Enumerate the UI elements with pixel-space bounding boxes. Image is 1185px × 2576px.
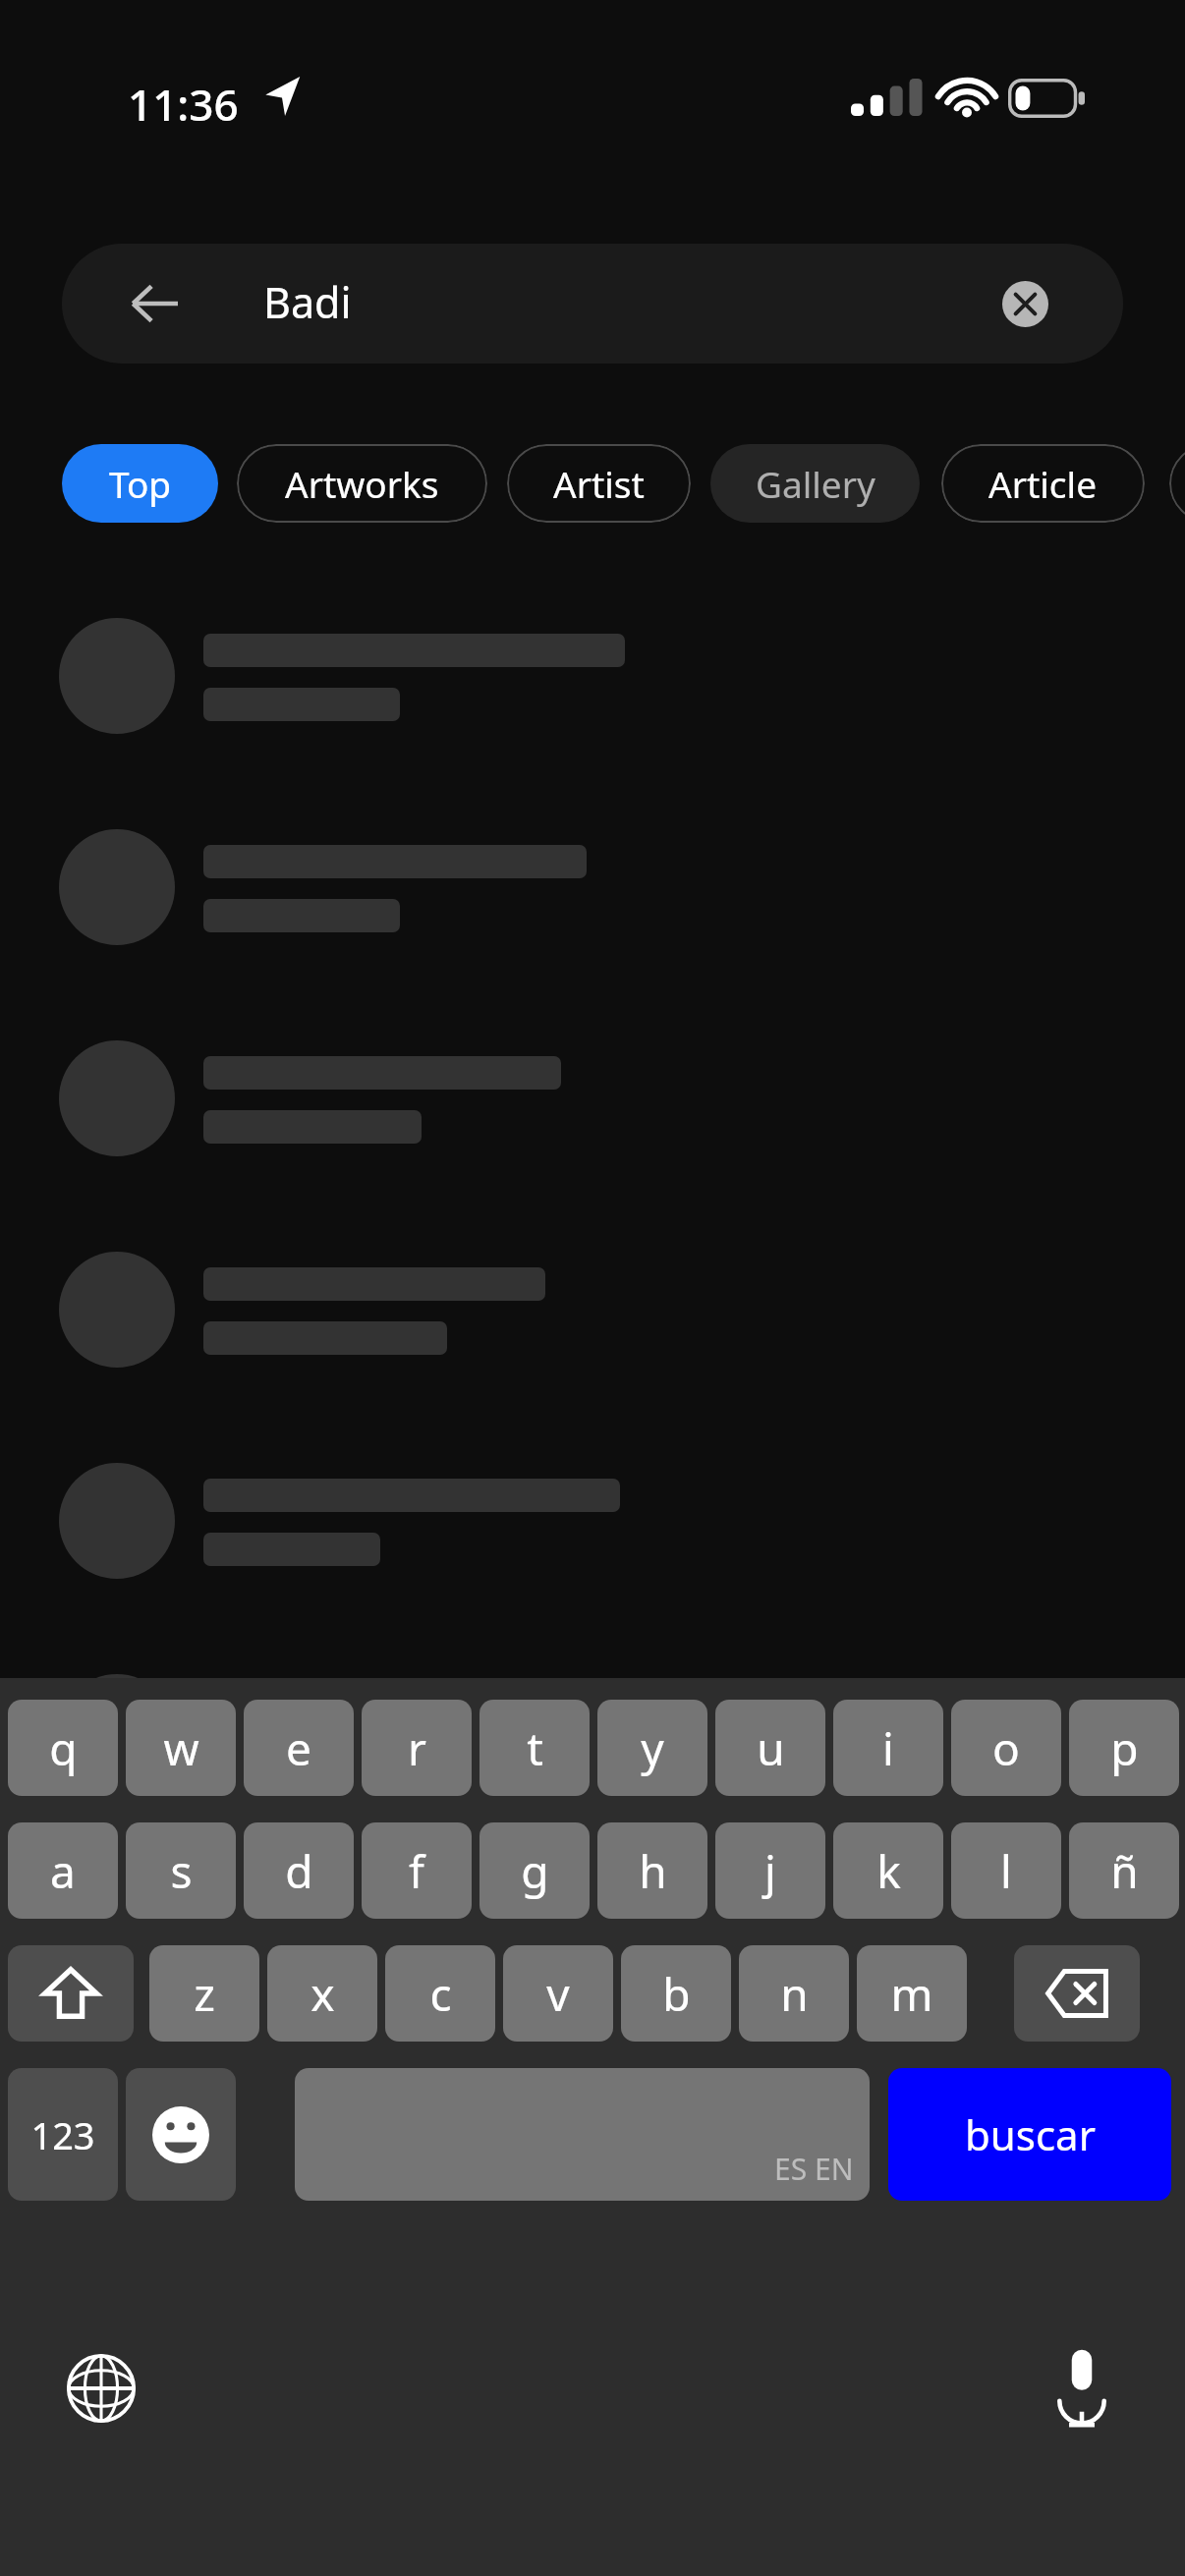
button[interactable]: Clear search — [991, 270, 1058, 337]
staticText: 123 — [30, 2109, 95, 2160]
button[interactable]: Backspace — [1014, 1945, 1140, 2042]
staticText: Badi — [263, 273, 352, 331]
button[interactable]: u — [715, 1700, 825, 1796]
staticText: i — [882, 1717, 894, 1779]
staticText: a — [50, 1840, 76, 1902]
button[interactable]: Gallery — [710, 444, 920, 523]
button[interactable]: d — [244, 1822, 354, 1919]
button[interactable]: s — [126, 1822, 236, 1919]
staticText: Artworks — [285, 459, 439, 508]
staticText: t — [527, 1717, 543, 1779]
button[interactable]: ñ — [1069, 1822, 1179, 1919]
button[interactable]: Back — [117, 266, 192, 341]
button[interactable]: n — [739, 1945, 849, 2042]
button[interactable]: b — [621, 1945, 731, 2042]
staticText: j — [764, 1840, 776, 1902]
staticText: d — [285, 1840, 313, 1902]
staticText: ñ — [1110, 1840, 1139, 1902]
staticText: n — [780, 1963, 809, 2025]
button[interactable] — [1169, 444, 1185, 523]
staticText: Article — [988, 459, 1098, 508]
staticText: b — [662, 1963, 691, 2025]
staticText: Artist — [553, 459, 645, 508]
staticText: buscar — [965, 2106, 1096, 2162]
staticText: r — [408, 1717, 426, 1779]
button[interactable]: Shift — [8, 1945, 134, 2042]
button[interactable]: Emoji — [126, 2068, 236, 2201]
button[interactable]: t — [480, 1700, 590, 1796]
staticText: Gallery — [756, 459, 875, 508]
button[interactable]: Change language — [47, 2334, 155, 2442]
button[interactable]: g — [480, 1822, 590, 1919]
button[interactable]: Top — [62, 444, 218, 523]
button[interactable]: Back — [62, 244, 1123, 364]
button[interactable]: m — [857, 1945, 967, 2042]
button[interactable]: z — [149, 1945, 259, 2042]
staticText: f — [409, 1840, 424, 1902]
button[interactable]: p — [1069, 1700, 1179, 1796]
staticText: o — [992, 1717, 1020, 1779]
staticText: p — [1110, 1717, 1139, 1779]
staticText: e — [286, 1717, 311, 1779]
button[interactable]: j — [715, 1822, 825, 1919]
button[interactable]: h — [597, 1822, 707, 1919]
staticText: s — [170, 1840, 193, 1902]
staticText: Top — [109, 459, 172, 508]
button[interactable]: a — [8, 1822, 118, 1919]
staticText: u — [757, 1717, 785, 1779]
button[interactable]: l — [951, 1822, 1061, 1919]
staticText: g — [521, 1840, 549, 1902]
staticText: c — [429, 1963, 452, 2025]
button[interactable]: e — [244, 1700, 354, 1796]
staticText: y — [641, 1717, 664, 1779]
button[interactable]: w — [126, 1700, 236, 1796]
button[interactable]: buscar — [888, 2068, 1171, 2201]
button[interactable]: f — [362, 1822, 472, 1919]
staticText: ES EN — [774, 2149, 854, 2189]
staticText: z — [194, 1963, 215, 2025]
button[interactable]: v — [503, 1945, 613, 2042]
button[interactable]: Voice input — [1028, 2334, 1136, 2442]
staticText: h — [639, 1840, 667, 1902]
staticText: q — [49, 1717, 78, 1779]
staticText: m — [890, 1963, 933, 2025]
button[interactable]: o — [951, 1700, 1061, 1796]
staticText: x — [310, 1963, 335, 2025]
button[interactable]: Article — [941, 444, 1145, 523]
button[interactable]: k — [833, 1822, 943, 1919]
button[interactable]: y — [597, 1700, 707, 1796]
staticText: 11:36 — [128, 75, 239, 134]
button[interactable]: 123 — [8, 2068, 118, 2201]
staticText: w — [163, 1717, 199, 1779]
button[interactable]: Space — [295, 2068, 870, 2201]
button[interactable]: Artworks — [237, 444, 487, 523]
button[interactable]: Artist — [507, 444, 691, 523]
button[interactable]: r — [362, 1700, 472, 1796]
button[interactable]: c — [385, 1945, 495, 2042]
button[interactable]: x — [267, 1945, 377, 2042]
staticText: v — [546, 1963, 570, 2025]
staticText: k — [876, 1840, 901, 1902]
button[interactable]: i — [833, 1700, 943, 1796]
button[interactable]: q — [8, 1700, 118, 1796]
staticText: l — [1000, 1840, 1012, 1902]
